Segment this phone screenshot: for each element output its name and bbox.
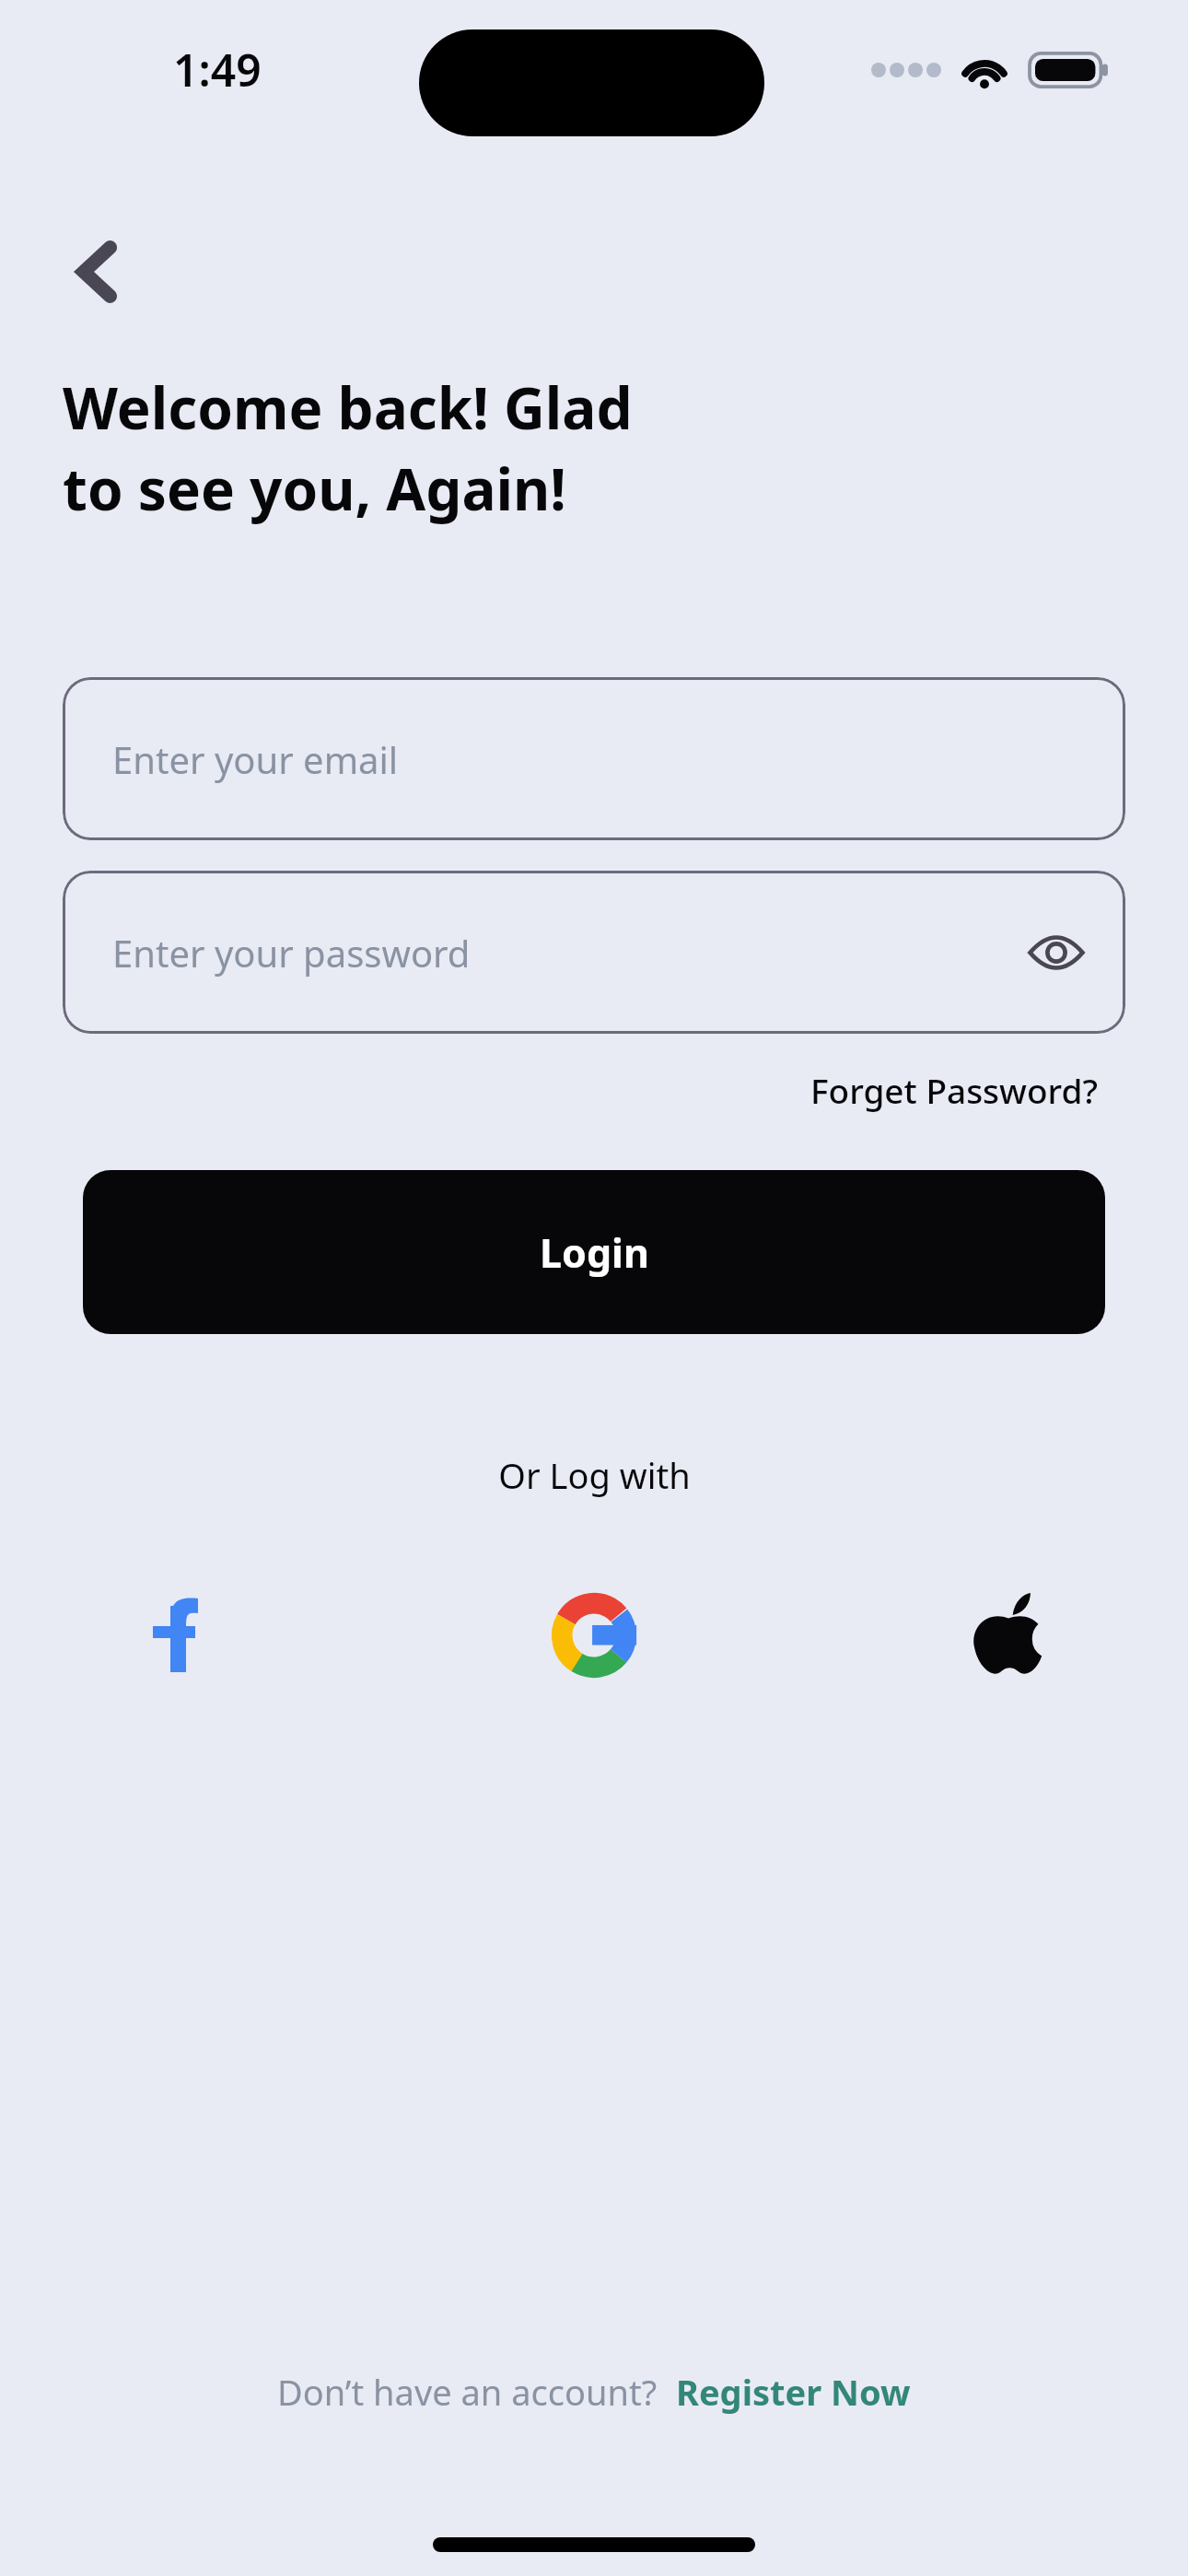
staticText: Enter your email <box>112 734 399 784</box>
button[interactable]: Log in with Apple <box>949 1575 1068 1695</box>
button[interactable]: Register Now <box>676 2368 911 2416</box>
button[interactable]: Enter your password <box>63 871 1125 1034</box>
button[interactable]: Log in with Facebook <box>120 1575 239 1695</box>
staticText: Welcome back! Glad <box>63 369 633 446</box>
staticText: 1:49 <box>173 40 262 100</box>
button[interactable]: Login <box>83 1170 1105 1334</box>
staticText: Forget Password? <box>810 1067 1098 1113</box>
button[interactable]: Log in with Google <box>534 1575 654 1695</box>
staticText: Don’t have an account? <box>277 2368 658 2416</box>
button[interactable]: Forget Password? <box>803 1060 1105 1120</box>
button[interactable]: Enter your email <box>63 677 1125 840</box>
staticText: to see you, Again! <box>63 450 566 527</box>
button[interactable]: Back <box>53 221 155 322</box>
staticText: Enter your password <box>112 928 471 978</box>
button[interactable]: Show password <box>1024 920 1089 985</box>
staticText: Or Log with <box>498 1451 691 1499</box>
staticText: Register Now <box>676 2368 911 2416</box>
staticText: Login <box>540 1225 649 1280</box>
